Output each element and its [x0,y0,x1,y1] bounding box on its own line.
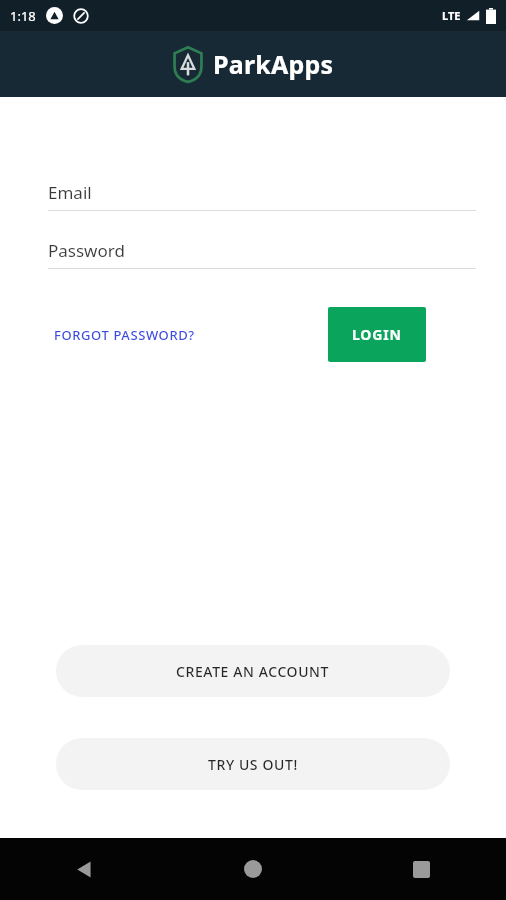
button[interactable]: CREATE AN ACCOUNT [56,645,450,697]
staticText: CREATE AN ACCOUNT [176,662,330,681]
button[interactable]: TRY US OUT! [56,738,450,790]
button[interactable]: Recents [337,838,506,900]
button[interactable]: Email [48,181,476,211]
staticText: ParkApps [213,47,334,81]
button[interactable]: Back [0,838,168,900]
staticText: 1:18 [10,7,36,25]
staticText: LTE [442,8,461,23]
button[interactable]: FORGOT PASSWORD? [48,318,201,352]
staticText: FORGOT PASSWORD? [54,326,195,344]
staticText: LOGIN [352,325,402,344]
button[interactable]: Password [48,239,476,269]
staticText: Email [48,181,92,204]
button[interactable]: Home [168,838,337,900]
staticText: TRY US OUT! [208,755,298,774]
button[interactable]: LOGIN [328,307,426,362]
staticText: Password [48,239,125,262]
